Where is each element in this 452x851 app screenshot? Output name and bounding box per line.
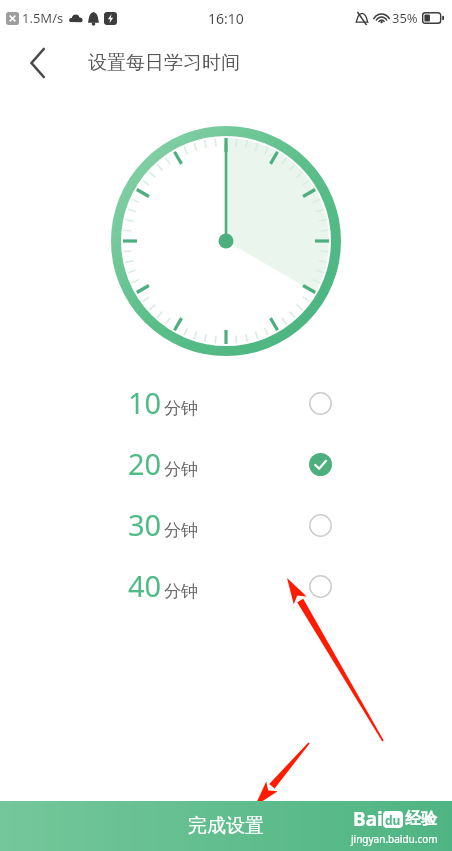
staticText: 40	[128, 566, 162, 605]
button[interactable]: 40	[0, 555, 452, 616]
staticText: du	[385, 812, 401, 828]
staticText: 35%	[392, 9, 418, 27]
button[interactable]: 20	[0, 433, 452, 494]
button[interactable]: 10	[0, 372, 452, 433]
staticText: 30	[128, 505, 162, 544]
staticText: 设置每日学习时间	[88, 51, 240, 75]
staticText: 16:10	[208, 9, 244, 28]
staticText: 完成设置	[188, 814, 264, 838]
button[interactable]: 30	[0, 494, 452, 555]
staticText: Bai	[353, 806, 383, 832]
button[interactable]: 完成设置	[0, 801, 452, 851]
staticText: 分钟	[164, 459, 198, 480]
staticText: 20	[128, 444, 162, 483]
staticText: jingyan.baidu.com	[351, 832, 438, 846]
button[interactable]: Back	[16, 41, 60, 85]
staticText: 分钟	[164, 520, 198, 541]
staticText: 分钟	[164, 398, 198, 419]
staticText: 10	[128, 383, 162, 422]
staticText: 经验	[405, 809, 437, 829]
staticText: 1.5M/s	[22, 9, 64, 27]
staticText: 分钟	[164, 581, 198, 602]
